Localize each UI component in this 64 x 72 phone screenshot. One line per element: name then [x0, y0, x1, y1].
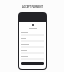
button[interactable] [21, 32, 44, 36]
button[interactable] [21, 44, 44, 48]
button[interactable] [21, 56, 44, 60]
button[interactable] [21, 50, 44, 54]
button[interactable] [21, 62, 44, 65]
staticText: ACCEPT PAYMENT [22, 5, 43, 8]
button[interactable] [21, 38, 44, 42]
